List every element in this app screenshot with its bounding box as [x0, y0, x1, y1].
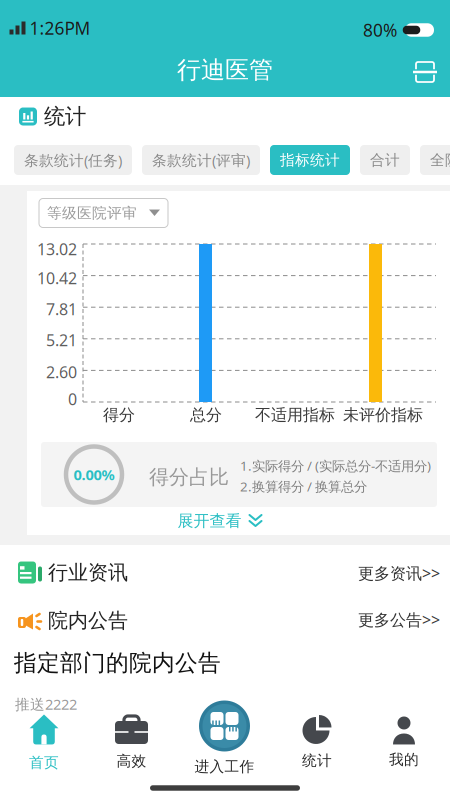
- staticText: 展开查看: [177, 511, 241, 531]
- button[interactable]: 高效: [87, 710, 175, 776]
- staticText: 等级医院评审: [47, 204, 137, 222]
- staticText: 得分占比: [149, 465, 229, 489]
- staticText: 1:26PM: [29, 16, 90, 39]
- staticText: 80%: [363, 18, 397, 41]
- button[interactable]: 条款统计(评审): [142, 145, 260, 175]
- staticText: 指定部门的院内公告: [14, 649, 221, 677]
- staticText: 统计: [302, 751, 332, 769]
- staticText: 高效: [116, 752, 146, 770]
- button[interactable]: 全院条款统计: [420, 145, 450, 175]
- staticText: 2.换算得分 / 换算总分: [240, 477, 367, 495]
- button[interactable]: 更多资讯>>: [358, 562, 440, 584]
- button[interactable]: 指定部门的院内公告: [0, 649, 450, 677]
- staticText: 2.60: [46, 361, 77, 383]
- button[interactable]: 我的: [360, 709, 448, 775]
- button[interactable]: Scan: [413, 61, 437, 83]
- button[interactable]: 指标统计: [270, 145, 350, 175]
- staticText: 全院条款统计: [430, 151, 450, 169]
- staticText: 推送2222: [15, 694, 77, 714]
- button[interactable]: 条款统计(任务): [14, 145, 132, 175]
- staticText: 首页: [29, 753, 59, 771]
- staticText: 条款统计(任务): [24, 150, 122, 170]
- staticText: 指标统计: [280, 151, 340, 169]
- staticText: 总分: [190, 405, 222, 425]
- button[interactable]: 统计: [273, 709, 361, 775]
- button[interactable]: 展开查看: [177, 511, 262, 531]
- staticText: 1.实际得分 / (实际总分-不适用分): [240, 457, 431, 474]
- staticText: 院内公告: [48, 608, 128, 633]
- staticText: 13.02: [37, 238, 77, 260]
- staticText: 进入工作: [194, 757, 254, 775]
- button[interactable]: 首页: [0, 710, 88, 776]
- button[interactable]: 进入工作: [176, 692, 272, 784]
- button[interactable]: 合计: [360, 145, 410, 175]
- button[interactable]: 等级医院评审: [39, 198, 168, 227]
- staticText: 统计: [44, 103, 86, 130]
- button[interactable]: 更多公告>>: [358, 609, 440, 630]
- staticText: 合计: [370, 151, 400, 169]
- staticText: 更多公告>>: [358, 609, 440, 630]
- staticText: 更多资讯>>: [358, 562, 440, 584]
- staticText: 7.81: [46, 298, 77, 320]
- staticText: 10.42: [37, 267, 77, 289]
- staticText: 条款统计(评审): [152, 150, 250, 170]
- staticText: 行业资讯: [48, 560, 128, 585]
- staticText: 0.00%: [73, 465, 114, 484]
- staticText: 得分: [103, 405, 135, 425]
- staticText: 0: [68, 388, 77, 410]
- staticText: 未评价指标: [343, 405, 423, 425]
- staticText: 不适用指标: [255, 405, 335, 425]
- staticText: 行迪医管: [177, 55, 273, 85]
- staticText: 我的: [389, 750, 419, 768]
- staticText: 5.21: [46, 329, 77, 351]
